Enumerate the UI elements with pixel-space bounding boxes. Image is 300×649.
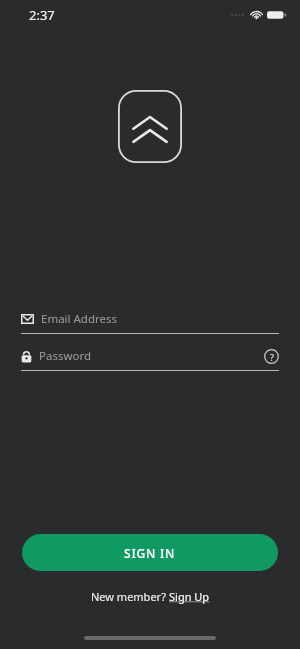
staticText: Password [39, 348, 92, 364]
button[interactable]: Email Address [21, 308, 279, 334]
staticText: 2:37 [29, 6, 55, 24]
button[interactable]: SIGN IN [22, 534, 278, 571]
button[interactable]: Help [264, 349, 279, 364]
staticText: Sign Up [169, 589, 210, 604]
staticText: Email Address [41, 311, 118, 327]
button[interactable]: Password [21, 345, 279, 371]
staticText: SIGN IN [124, 545, 176, 561]
button[interactable]: Sign Up [169, 589, 210, 604]
staticText: ? [270, 351, 274, 363]
staticText: New member? [91, 589, 169, 604]
